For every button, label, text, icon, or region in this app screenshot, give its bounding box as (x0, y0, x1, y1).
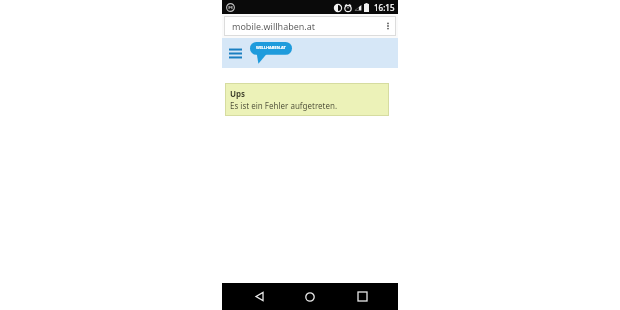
button[interactable]: mobile.willhaben.at (224, 16, 396, 36)
button[interactable]: Home (295, 283, 325, 310)
button[interactable]: Menu (225, 43, 245, 63)
staticText: WILLHABEN.AT (256, 45, 286, 50)
button[interactable]: Back (244, 283, 274, 310)
staticText: mobile.willhaben.at (232, 20, 316, 32)
staticText: Ups (230, 88, 246, 99)
button[interactable]: willhaben.at (250, 42, 292, 64)
staticText: 16:15 (374, 2, 395, 13)
button[interactable]: Recent apps (347, 283, 377, 310)
staticText: Es ist ein Fehler aufgetreten. (230, 100, 338, 111)
button[interactable]: More options (378, 16, 398, 36)
